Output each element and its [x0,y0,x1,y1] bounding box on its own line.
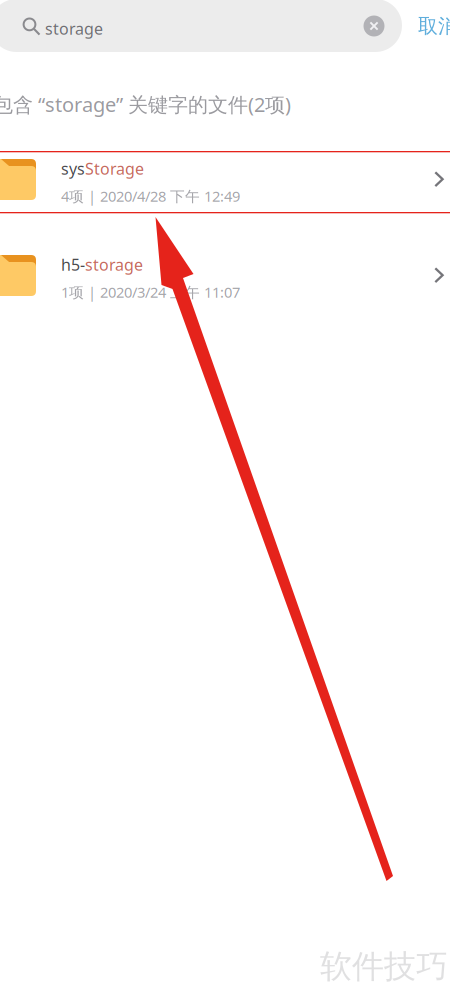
staticText: h5- [61,254,85,275]
button[interactable]: Clear search text [357,9,391,43]
staticText: 包含 “storage” 关键字的文件(2项) [0,91,291,118]
staticText: 1项 | 2020/3/24 上午 11:07 [61,282,240,302]
button[interactable]: sys [0,132,450,228]
staticText: sys [61,158,85,179]
button[interactable]: 取消 [418,11,450,41]
button[interactable]: storage [0,0,402,52]
staticText: storage [45,18,103,39]
staticText: 软件技巧 [320,947,448,986]
staticText: Storage [85,158,144,179]
staticText: 4项 | 2020/4/28 下午 12:49 [61,186,240,206]
staticText: storage [85,254,143,275]
button[interactable]: h5- [0,228,450,324]
staticText: 取消 [418,14,450,38]
